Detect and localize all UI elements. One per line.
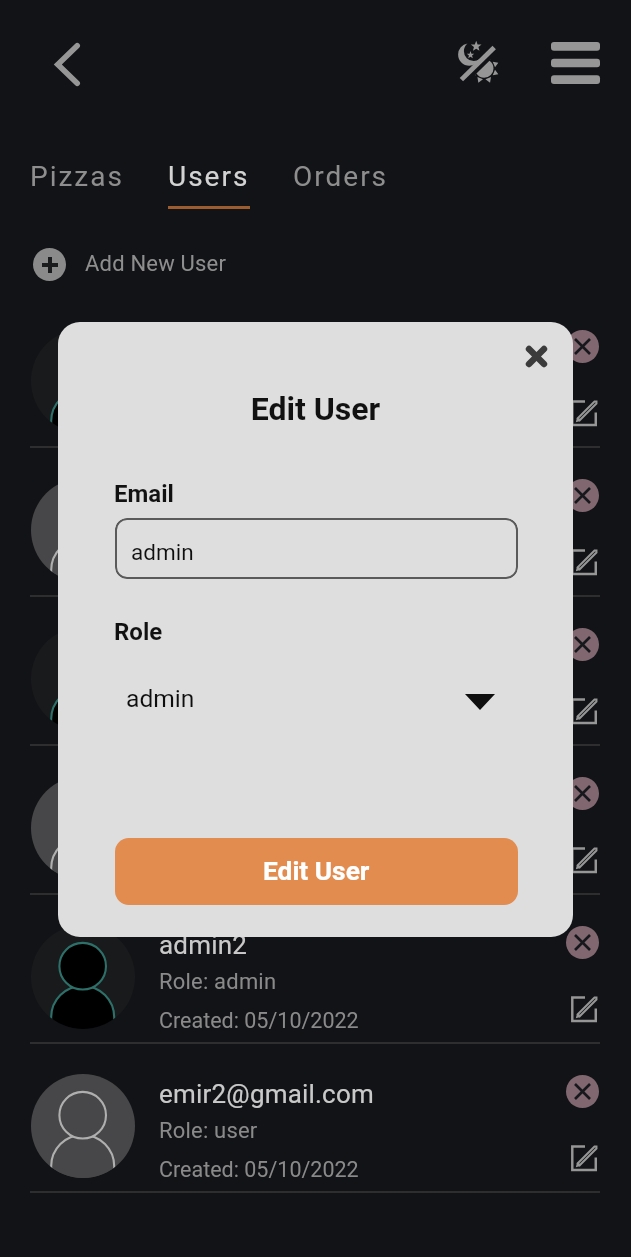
button[interactable]	[0, 299, 631, 448]
staticText: user@gmail.com	[159, 483, 358, 513]
staticText: Role: user	[159, 671, 258, 697]
button[interactable]: Delete user	[566, 479, 599, 512]
staticText: admin2	[159, 930, 248, 960]
button[interactable]: Users	[168, 160, 250, 209]
button[interactable]: Edit user	[568, 694, 602, 728]
button[interactable]: Edit user	[568, 1141, 602, 1175]
button[interactable]	[0, 448, 631, 597]
staticText: Edit User	[263, 856, 370, 887]
button[interactable]: Back	[39, 36, 95, 92]
button[interactable]: Menu	[545, 33, 605, 93]
button[interactable]: admin	[115, 518, 518, 579]
staticText: Role: user	[159, 820, 258, 846]
button[interactable]	[0, 1044, 631, 1193]
button[interactable]	[0, 746, 631, 895]
button[interactable]	[0, 895, 631, 1044]
staticText: Created: 05/10/2022	[159, 561, 359, 586]
button[interactable]: Edit user	[568, 843, 602, 877]
staticText: Users	[168, 160, 250, 193]
staticText: Role: admin	[159, 969, 277, 995]
staticText: Role: admin	[159, 373, 277, 399]
button[interactable]: Add New User	[33, 247, 227, 281]
staticText: Edit User	[58, 390, 573, 428]
staticText: admin	[131, 539, 194, 565]
button[interactable]: Delete user	[566, 777, 599, 810]
staticText: emir@gmail.com	[159, 632, 360, 662]
button[interactable]: Close dialog	[512, 332, 560, 380]
staticText: Add New User	[85, 251, 227, 277]
staticText: Created: 05/10/2022	[159, 1008, 359, 1033]
staticText: admin	[126, 684, 195, 713]
button[interactable]: Delete user	[566, 330, 599, 363]
button[interactable]: Delete user	[566, 628, 599, 661]
button[interactable]: Delete user	[566, 926, 599, 959]
staticText: emir2@gmail.com	[159, 1079, 374, 1109]
button[interactable]: Toggle dark mode	[448, 32, 514, 98]
button[interactable]	[0, 597, 631, 746]
staticText: Role: user	[159, 522, 258, 548]
staticText: Pizzas	[30, 160, 124, 193]
button[interactable]: Delete user	[566, 1075, 599, 1108]
staticText: Email	[114, 480, 174, 508]
button[interactable]: Edit user	[568, 396, 602, 430]
button[interactable]: Edit User	[115, 838, 518, 905]
staticText: Created: 05/10/2022	[159, 412, 359, 437]
button[interactable]: Pizzas	[30, 160, 124, 209]
button[interactable]: Edit user	[568, 992, 602, 1026]
staticText: Created: 05/10/2022	[159, 1157, 359, 1182]
button[interactable]: Select role	[454, 676, 506, 728]
staticText: Orders	[293, 160, 389, 193]
staticText: Created: 05/10/2022	[159, 859, 359, 884]
button[interactable]: Orders	[293, 160, 389, 209]
staticText: Role	[114, 618, 163, 646]
staticText: Role: user	[159, 1118, 258, 1144]
button[interactable]: Edit user	[568, 545, 602, 579]
